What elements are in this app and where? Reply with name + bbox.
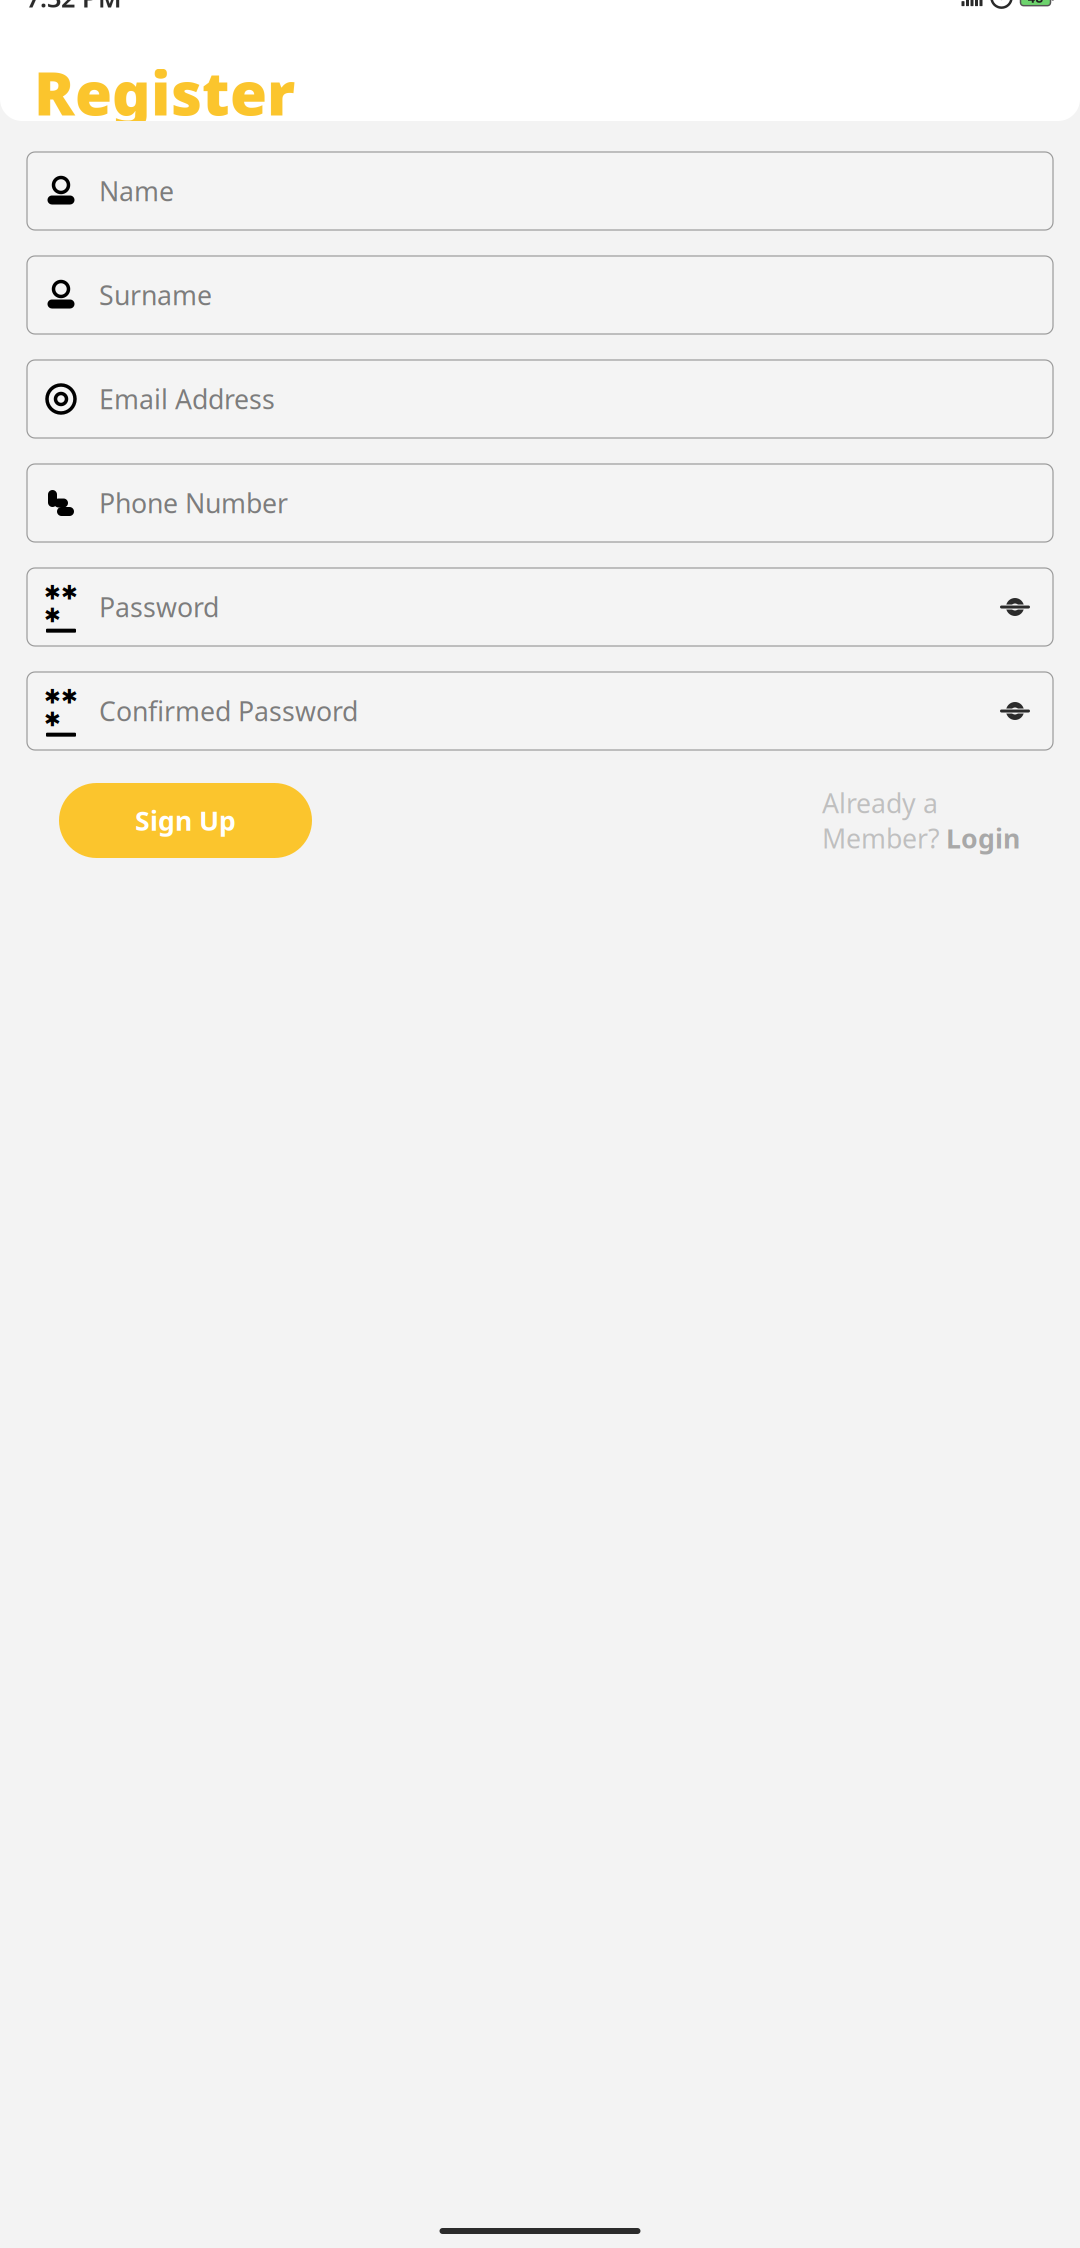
staticText: Surname (99, 277, 212, 313)
staticText: Register (34, 52, 295, 132)
button[interactable]: Phone Number (27, 464, 1053, 542)
staticText: ✱✱✱ (44, 581, 78, 627)
staticText: 7:32 PM (26, 0, 122, 14)
staticText: 48 (1027, 0, 1043, 6)
staticText: Phone Number (99, 485, 288, 521)
button[interactable]: Email Address (27, 360, 1053, 438)
staticText: ✱✱✱ (44, 685, 78, 731)
staticText: Sign Up (135, 803, 236, 838)
button[interactable]: Name (27, 152, 1053, 230)
staticText: Email Address (99, 381, 275, 417)
button[interactable]: Already a Member? (822, 785, 1020, 856)
staticText: Already a Member? (822, 785, 940, 856)
staticText: Login (946, 820, 1020, 856)
staticText: Password (99, 589, 219, 625)
staticText: Name (99, 173, 174, 209)
button[interactable]: ✱✱✱ (27, 672, 1053, 750)
button[interactable]: Surname (27, 256, 1053, 334)
button[interactable]: ✱✱✱ (27, 568, 1053, 646)
staticText: Confirmed Password (99, 693, 358, 729)
button[interactable]: Sign Up (59, 783, 312, 858)
